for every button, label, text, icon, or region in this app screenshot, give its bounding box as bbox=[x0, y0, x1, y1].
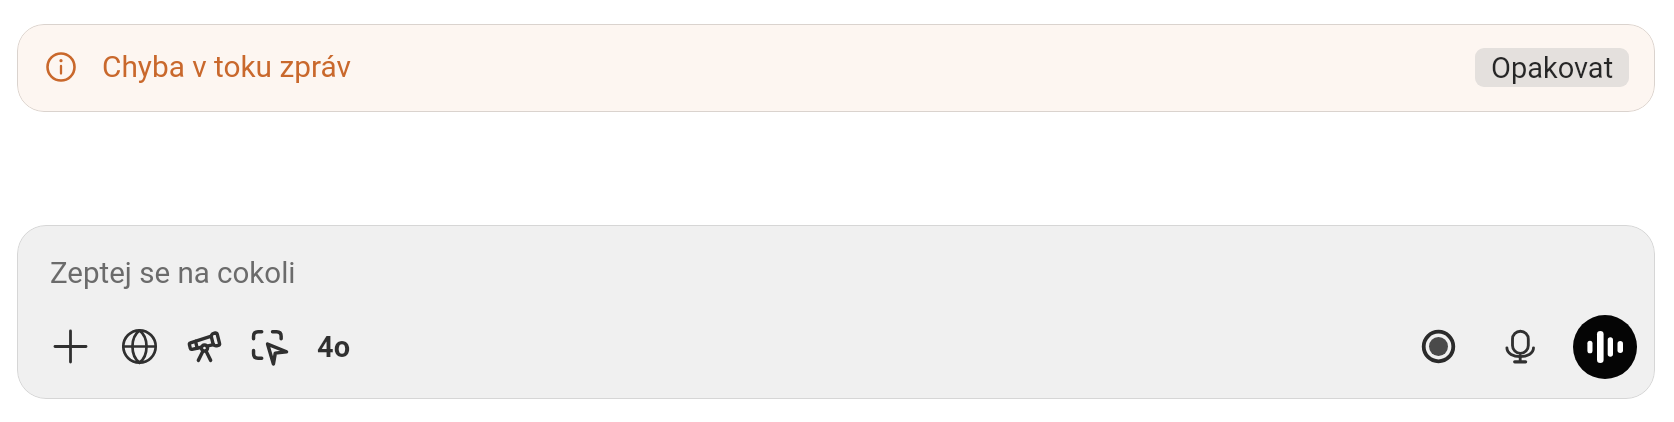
button[interactable]: Search the web bbox=[121, 328, 158, 365]
other: Info bbox=[46, 52, 76, 82]
staticText: Zeptej se na cokoli bbox=[50, 256, 296, 291]
button[interactable]: Deep research bbox=[186, 328, 223, 365]
staticText: Chyba v toku zpráv bbox=[102, 49, 351, 84]
button[interactable]: Zeptej se na cokoli bbox=[18, 226, 1654, 314]
staticText: 4o bbox=[317, 330, 351, 364]
button[interactable]: Record bbox=[1420, 328, 1457, 365]
button[interactable]: 4o bbox=[308, 328, 359, 365]
button[interactable]: Scan bbox=[250, 328, 287, 365]
staticText: Opakovat bbox=[1491, 51, 1614, 85]
button[interactable]: Voice mode bbox=[1573, 315, 1637, 379]
button[interactable]: Microphone bbox=[1502, 328, 1539, 365]
button[interactable]: Add bbox=[52, 328, 89, 365]
button[interactable]: Opakovat bbox=[1475, 48, 1629, 87]
